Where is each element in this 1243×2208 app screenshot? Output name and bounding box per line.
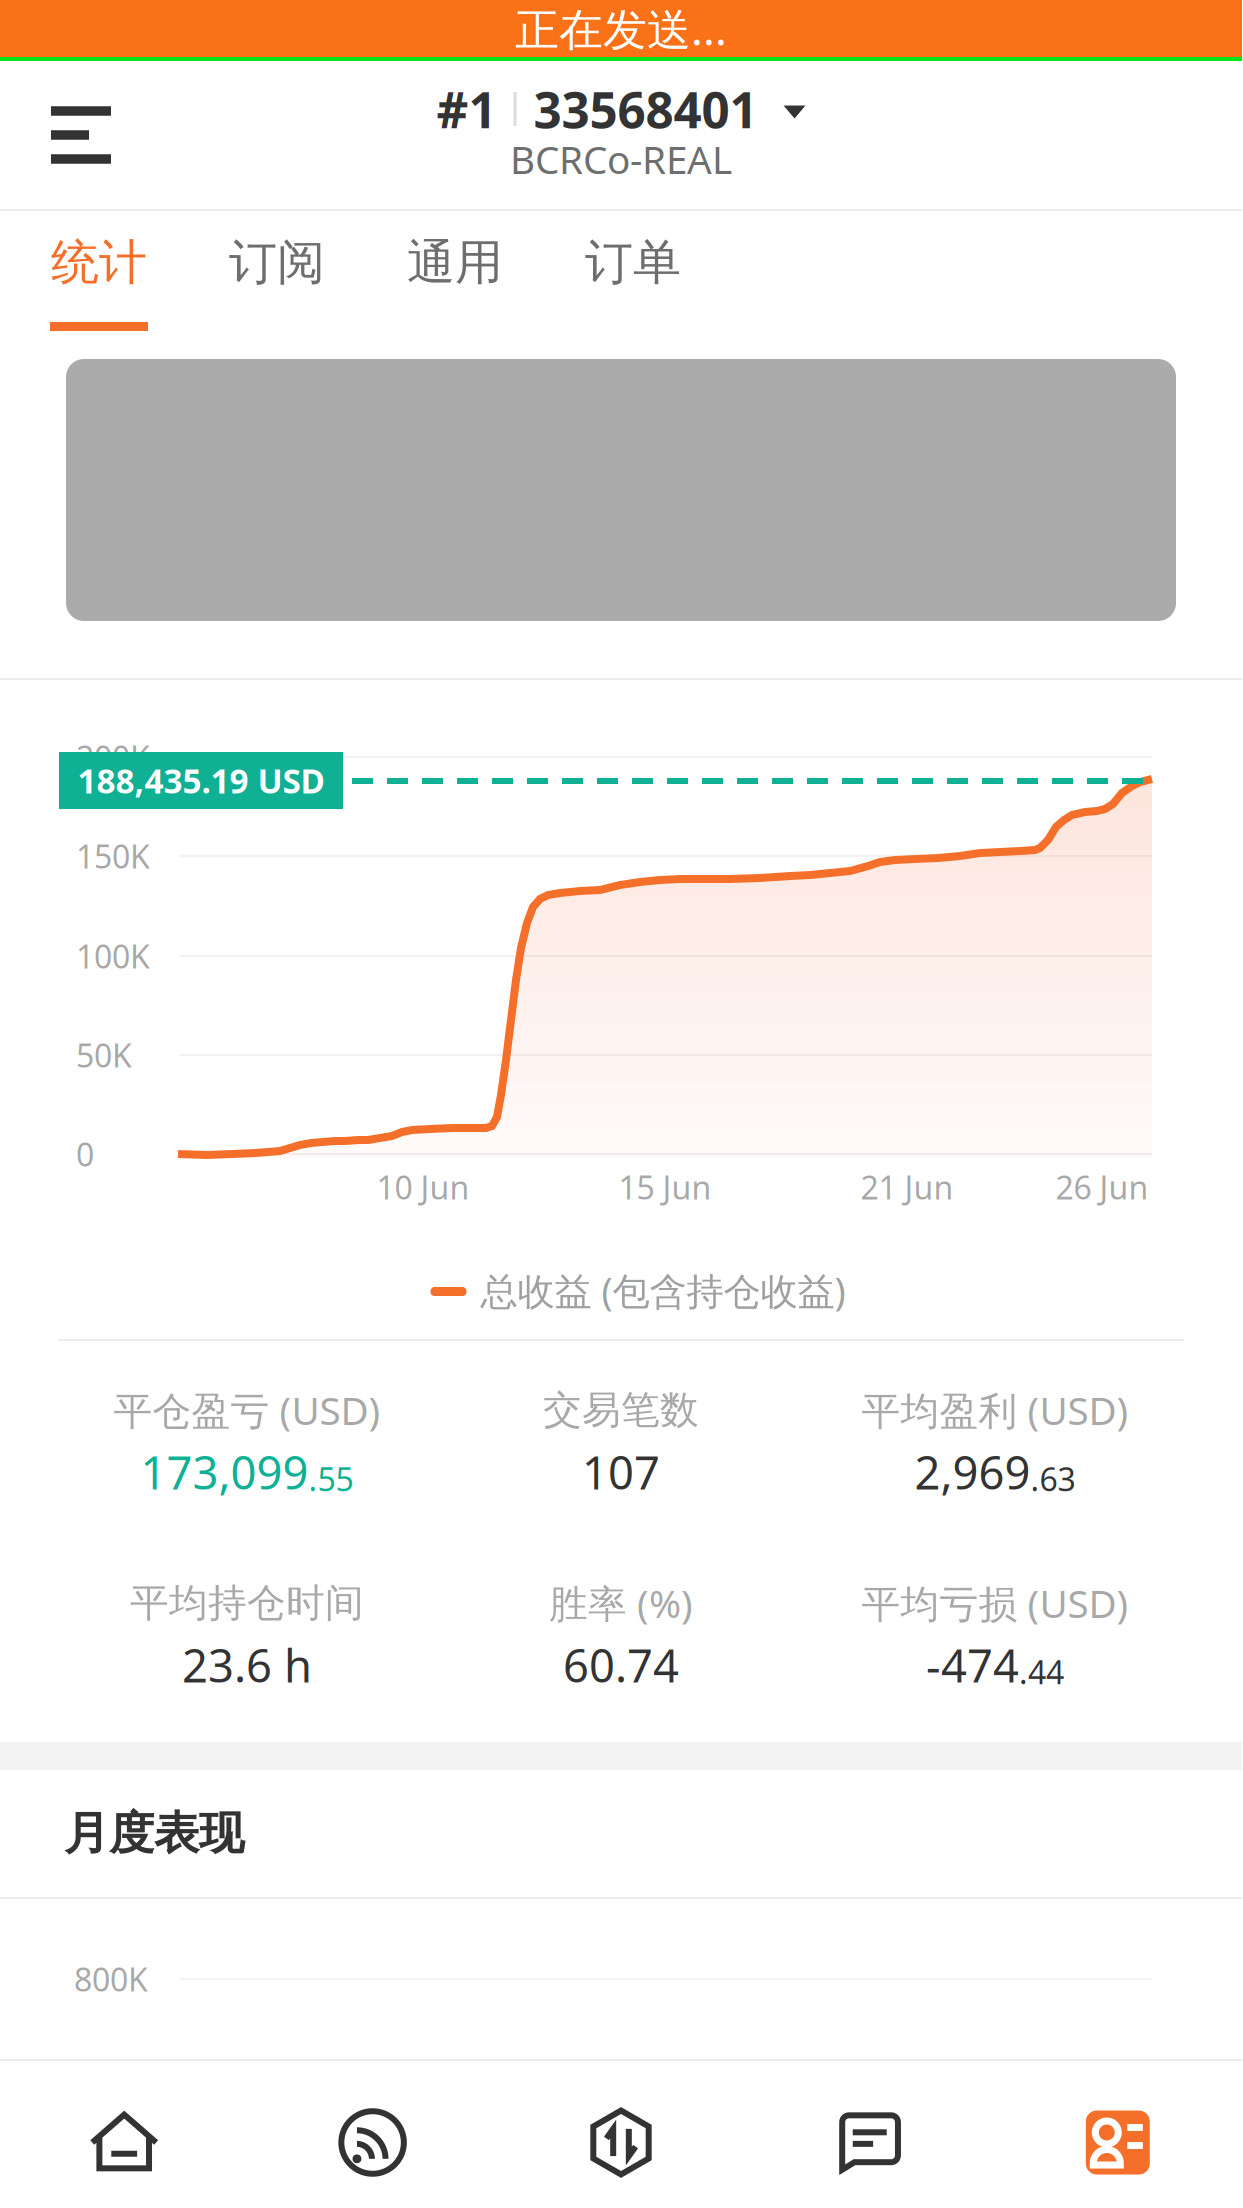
button[interactable]: Trade [497,2061,745,2208]
staticText: 800K [74,1958,148,2000]
staticText: 21 Jun [860,1166,953,1208]
staticText: #1 [436,76,496,142]
staticText: 交易笔数 [543,1386,699,1434]
staticText: 50K [76,1034,132,1076]
staticText: 平仓盈亏 (USD) [113,1384,380,1436]
staticText: 平均持仓时间 [130,1579,364,1627]
staticText: BCRCo-REAL [510,133,732,185]
staticText: 通用 [407,233,503,292]
staticText: 平均盈利 (USD) [861,1384,1128,1436]
staticText: 正在发送... [515,0,727,58]
staticText: 统计 [51,233,147,292]
staticText: 33568401 [533,76,757,142]
staticText: 150K [76,835,150,877]
staticText: 订单 [585,233,681,292]
staticText: 188,435.19 USD [77,758,324,803]
staticText: 23.6 h [182,1635,312,1695]
staticText: .55 [308,1458,353,1500]
button[interactable]: 统计 [10,211,188,331]
staticText: 月度表现 [64,1806,244,1861]
staticText: 26 Jun [1055,1166,1148,1208]
staticText: 总收益 (包含持仓收益) [480,1266,845,1315]
staticText: 173,099 [140,1442,308,1502]
button[interactable]: 通用 [366,211,544,331]
button[interactable]: 订单 [544,211,722,331]
staticText: 100K [76,935,150,977]
staticText: 15 Jun [618,1166,711,1208]
staticText: .44 [1019,1651,1064,1693]
staticText: 2,969 [914,1442,1030,1502]
staticText: 60.74 [563,1635,679,1695]
staticText: 0 [76,1133,94,1175]
button[interactable]: Profile [994,2061,1242,2208]
staticText: 10 Jun [376,1166,469,1208]
staticText: 平均亏损 (USD) [861,1577,1128,1629]
staticText: -474 [926,1635,1019,1695]
staticText: 107 [582,1442,660,1502]
button[interactable]: Chat [745,2061,994,2208]
button[interactable]: #1 [0,61,1242,180]
button[interactable]: Menu [0,61,162,209]
staticText: 胜率 (%) [549,1577,693,1629]
staticText: 200K [76,736,150,778]
button[interactable]: Home [0,2061,248,2208]
staticText: .63 [1030,1458,1075,1500]
staticText: 订阅 [229,233,325,292]
button[interactable]: 订阅 [188,211,366,331]
button[interactable]: Signals [248,2061,497,2208]
